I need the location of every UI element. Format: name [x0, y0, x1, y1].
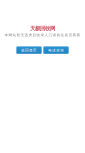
staticText: 天极回收网	[30, 25, 55, 32]
button[interactable]: 电话咨询	[43, 46, 69, 54]
staticText: 电话咨询	[48, 47, 64, 53]
staticText: 本网站暂无该类目收录入口请前往首页看看	[4, 33, 80, 37]
staticText: 返回首页	[21, 47, 37, 53]
button[interactable]: 返回首页	[16, 46, 42, 54]
